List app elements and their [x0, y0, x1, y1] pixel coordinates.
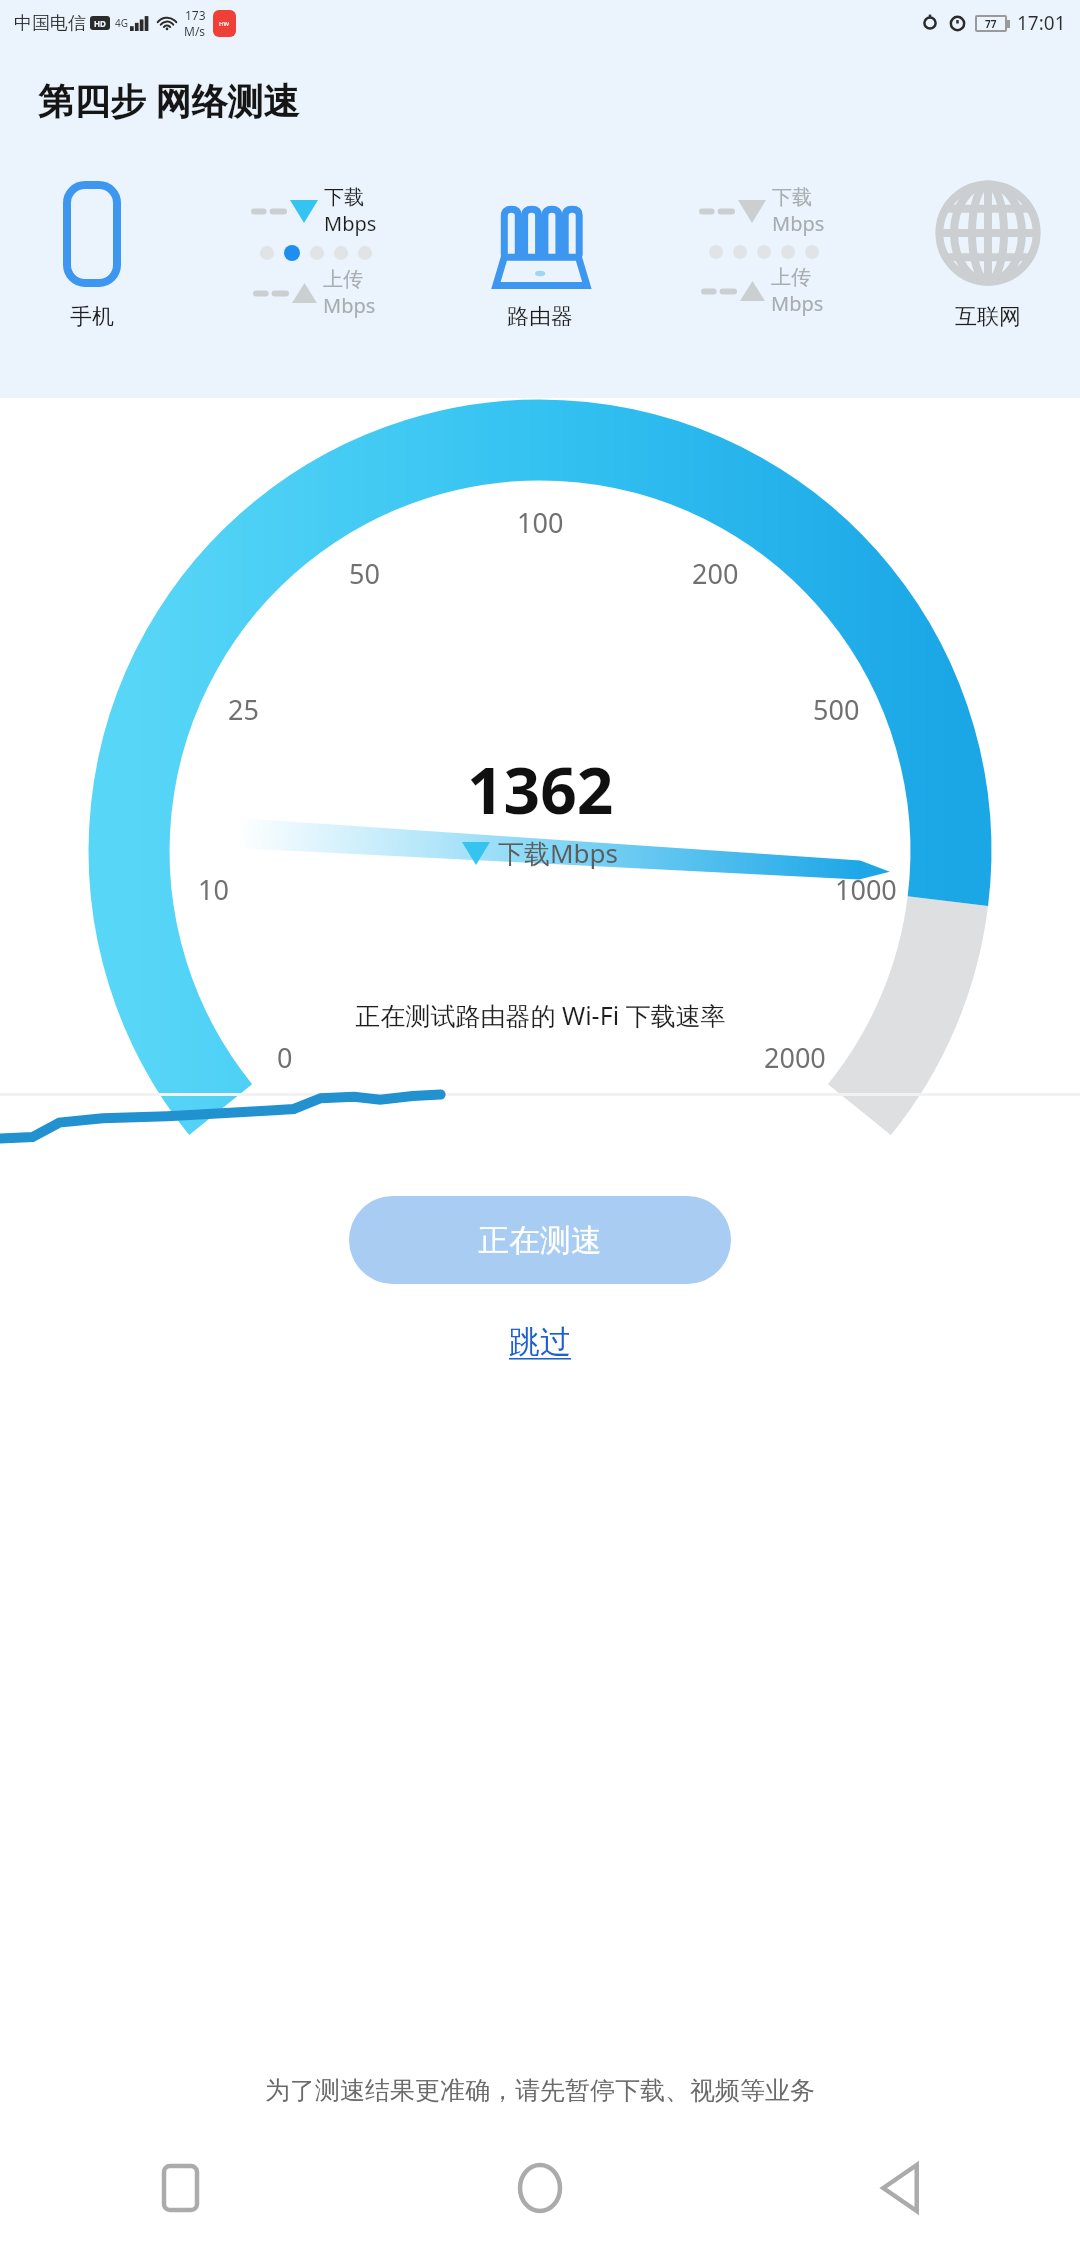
- staticText: Mbps: [772, 210, 825, 237]
- staticText: 0: [277, 1039, 293, 1076]
- staticText: Mbps: [771, 290, 824, 317]
- staticText: 1000: [835, 871, 897, 908]
- staticText: 下载: [324, 185, 364, 210]
- staticText: 17:01: [1017, 10, 1066, 36]
- staticText: 跳过: [509, 1322, 571, 1361]
- staticText: 173: [185, 7, 206, 23]
- staticText: 50: [349, 555, 380, 592]
- staticText: 上传: [323, 267, 363, 292]
- staticText: 下载Mbps: [498, 835, 619, 871]
- staticText: 互联网: [955, 303, 1021, 331]
- staticText: 25: [228, 691, 259, 728]
- staticText: 100: [517, 504, 564, 541]
- staticText: 1362: [467, 746, 614, 833]
- staticText: M/s: [184, 23, 206, 39]
- staticText: 上传: [771, 265, 811, 290]
- staticText: 下载: [772, 185, 812, 210]
- button[interactable]: Back: [720, 2132, 1080, 2244]
- staticText: 200: [692, 555, 739, 592]
- staticText: 500: [813, 691, 860, 728]
- staticText: 正在测速: [478, 1221, 602, 1260]
- staticText: 10: [198, 871, 229, 908]
- staticText: 第四步 网络测速: [38, 76, 300, 125]
- staticText: 2000: [764, 1039, 826, 1076]
- staticText: 4G: [115, 16, 128, 30]
- staticText: 中国电信: [14, 12, 86, 35]
- staticText: Mbps: [323, 292, 376, 319]
- button[interactable]: Recents: [0, 2132, 360, 2244]
- staticText: 为了测速结果更准确，请先暂停下载、视频等业务: [265, 2075, 815, 2106]
- staticText: HW: [219, 20, 230, 28]
- staticText: HD: [94, 18, 106, 29]
- staticText: Mbps: [324, 210, 377, 237]
- button[interactable]: 跳过: [483, 1314, 597, 1369]
- staticText: 手机: [70, 303, 114, 331]
- staticText: 77: [985, 17, 997, 30]
- staticText: 路由器: [507, 303, 573, 331]
- button[interactable]: Home: [360, 2132, 720, 2244]
- staticText: 正在测试路由器的 Wi-Fi 下载速率: [355, 998, 726, 1032]
- button[interactable]: 正在测速: [349, 1196, 731, 1284]
